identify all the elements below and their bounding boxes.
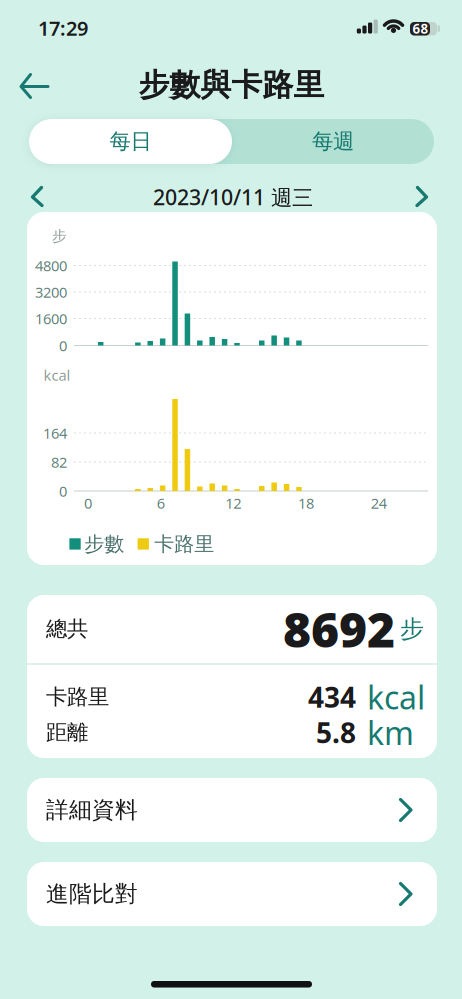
staticText: 每週 (312, 128, 354, 155)
staticText: 步數 (84, 532, 124, 556)
staticText: 1600 (35, 309, 67, 328)
staticText: 步 (400, 614, 424, 644)
button[interactable]: Previous day (16, 175, 58, 219)
button[interactable]: 詳細資料 (27, 778, 437, 842)
staticText: 5.8 (316, 714, 356, 751)
staticText: 17:29 (38, 15, 88, 41)
staticText: 3200 (35, 282, 67, 302)
button[interactable]: Back (10, 64, 58, 108)
staticText: 步 (52, 227, 67, 245)
staticText: kcal (43, 365, 70, 385)
staticText: 卡路里 (154, 532, 214, 556)
staticText: 24 (371, 493, 387, 513)
staticText: 18 (298, 493, 314, 513)
button[interactable]: 進階比對 (27, 862, 437, 926)
staticText: 6 (157, 493, 165, 513)
button[interactable]: 每週 (232, 119, 434, 164)
staticText: 8692 (283, 597, 395, 661)
staticText: 總共 (46, 616, 88, 642)
staticText: 434 (308, 678, 356, 716)
staticText: 68 (412, 20, 428, 37)
staticText: 進階比對 (46, 880, 138, 908)
staticText: 82 (51, 452, 67, 472)
staticText: 步數與卡路里 (138, 66, 324, 104)
button[interactable]: Next day (404, 175, 446, 219)
staticText: 164 (43, 423, 67, 443)
staticText: 距離 (46, 719, 88, 746)
staticText: 0 (59, 481, 67, 501)
staticText: 卡路里 (46, 684, 109, 710)
staticText: 0 (84, 493, 92, 513)
staticText: 12 (225, 493, 241, 513)
staticText: 4800 (35, 256, 67, 275)
staticText: km (367, 711, 414, 754)
staticText: 每日 (109, 128, 151, 155)
staticText: 2023/10/11 週三 (153, 183, 313, 211)
staticText: 詳細資料 (46, 796, 138, 824)
button[interactable]: 每日 (29, 119, 232, 164)
staticText: kcal (367, 676, 425, 718)
staticText: 0 (59, 336, 67, 355)
